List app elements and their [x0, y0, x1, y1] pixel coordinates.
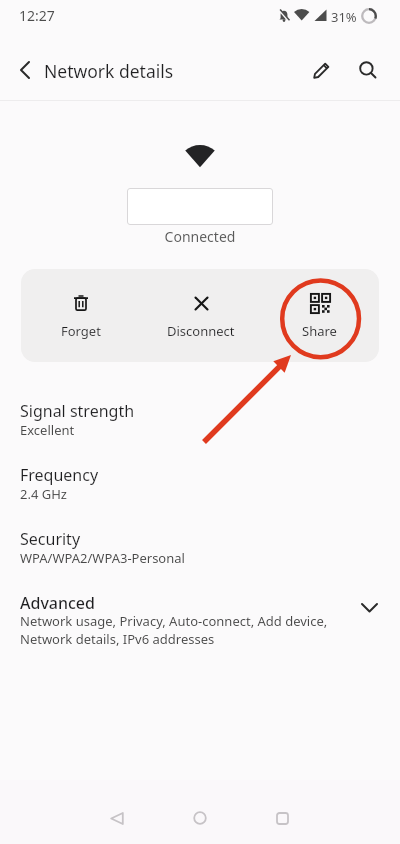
staticText: Security: [20, 528, 81, 550]
button[interactable]: [8, 53, 42, 87]
staticText: Share: [302, 322, 337, 340]
staticText: Connected: [0, 227, 400, 246]
button[interactable]: [305, 53, 339, 87]
button[interactable]: Forget: [21, 269, 141, 362]
button[interactable]: Security: [0, 528, 400, 586]
staticText: Advanced: [20, 592, 95, 614]
button[interactable]: Signal strength: [0, 400, 400, 458]
button[interactable]: Frequency: [0, 464, 400, 522]
staticText: 31%: [331, 8, 357, 26]
button[interactable]: Advanced: [0, 588, 400, 658]
button[interactable]: [266, 802, 298, 834]
staticText: 12:27: [19, 6, 55, 25]
button[interactable]: Disconnect: [141, 269, 260, 362]
button[interactable]: Share: [260, 269, 379, 362]
staticText: 2.4 GHz: [20, 485, 67, 503]
staticText: Signal strength: [20, 400, 135, 422]
staticText: Forget: [61, 322, 101, 340]
button[interactable]: [184, 802, 216, 834]
staticText: Excellent: [20, 421, 75, 439]
staticText: Network details, IPv6 addresses: [20, 630, 215, 648]
staticText: Frequency: [20, 464, 99, 486]
button[interactable]: [101, 802, 133, 834]
staticText: Disconnect: [167, 322, 235, 340]
button[interactable]: [351, 53, 385, 87]
staticText: Network details: [44, 59, 174, 83]
staticText: Network usage, Privacy, Auto-connect, Ad…: [20, 612, 328, 630]
staticText: WPA/WPA2/WPA3-Personal: [20, 549, 185, 567]
